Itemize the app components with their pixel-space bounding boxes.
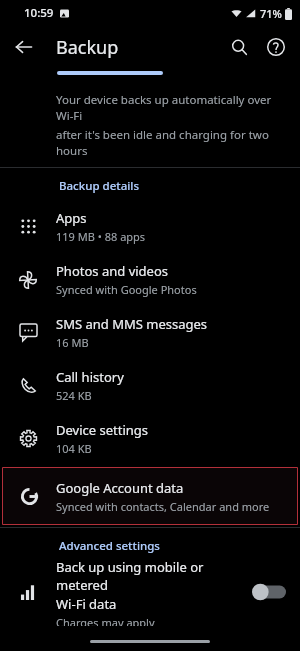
button[interactable]: Call history <box>0 359 300 412</box>
staticText: Synced with Google Photos <box>56 282 197 297</box>
staticText: Photos and videos <box>56 262 169 280</box>
button[interactable]: Back up using mobile or metered <box>0 558 300 626</box>
staticText: Synced with contacts, Calendar and more <box>56 499 270 514</box>
staticText: Backup details <box>59 178 140 194</box>
button[interactable]: Help <box>259 30 293 64</box>
staticText: 524 KB <box>56 388 92 403</box>
staticText: Device settings <box>56 421 149 439</box>
staticText: 71% <box>260 6 282 21</box>
staticText: Advanced settings <box>59 538 160 554</box>
staticText: Apps <box>56 209 87 227</box>
staticText: 119 MB • 88 apps <box>56 229 146 244</box>
button[interactable]: Apps <box>0 200 300 253</box>
button[interactable]: Search <box>222 30 256 64</box>
button[interactable]: SMS and MMS messages <box>0 306 300 359</box>
button[interactable]: Back <box>8 31 40 63</box>
staticText: Back up using mobile or metered <box>56 558 252 594</box>
staticText: Your device backs up automatically over … <box>56 92 286 124</box>
button[interactable]: Google Account data <box>2 467 298 525</box>
staticText: SMS and MMS messages <box>56 315 208 333</box>
staticText: Charges may apply <box>56 615 155 626</box>
button[interactable]: Device settings <box>0 412 300 465</box>
staticText: Google Account data <box>56 479 184 497</box>
button[interactable]: Photos and videos <box>0 253 300 306</box>
staticText: 10:59 <box>24 5 54 21</box>
staticText: 104 KB <box>56 441 92 456</box>
staticText: Backup <box>56 35 119 60</box>
staticText: 16 MB <box>56 335 89 350</box>
staticText: Call history <box>56 368 124 386</box>
staticText: after it's been idle and charging for tw… <box>56 127 286 159</box>
staticText: Wi-Fi data <box>56 595 117 613</box>
